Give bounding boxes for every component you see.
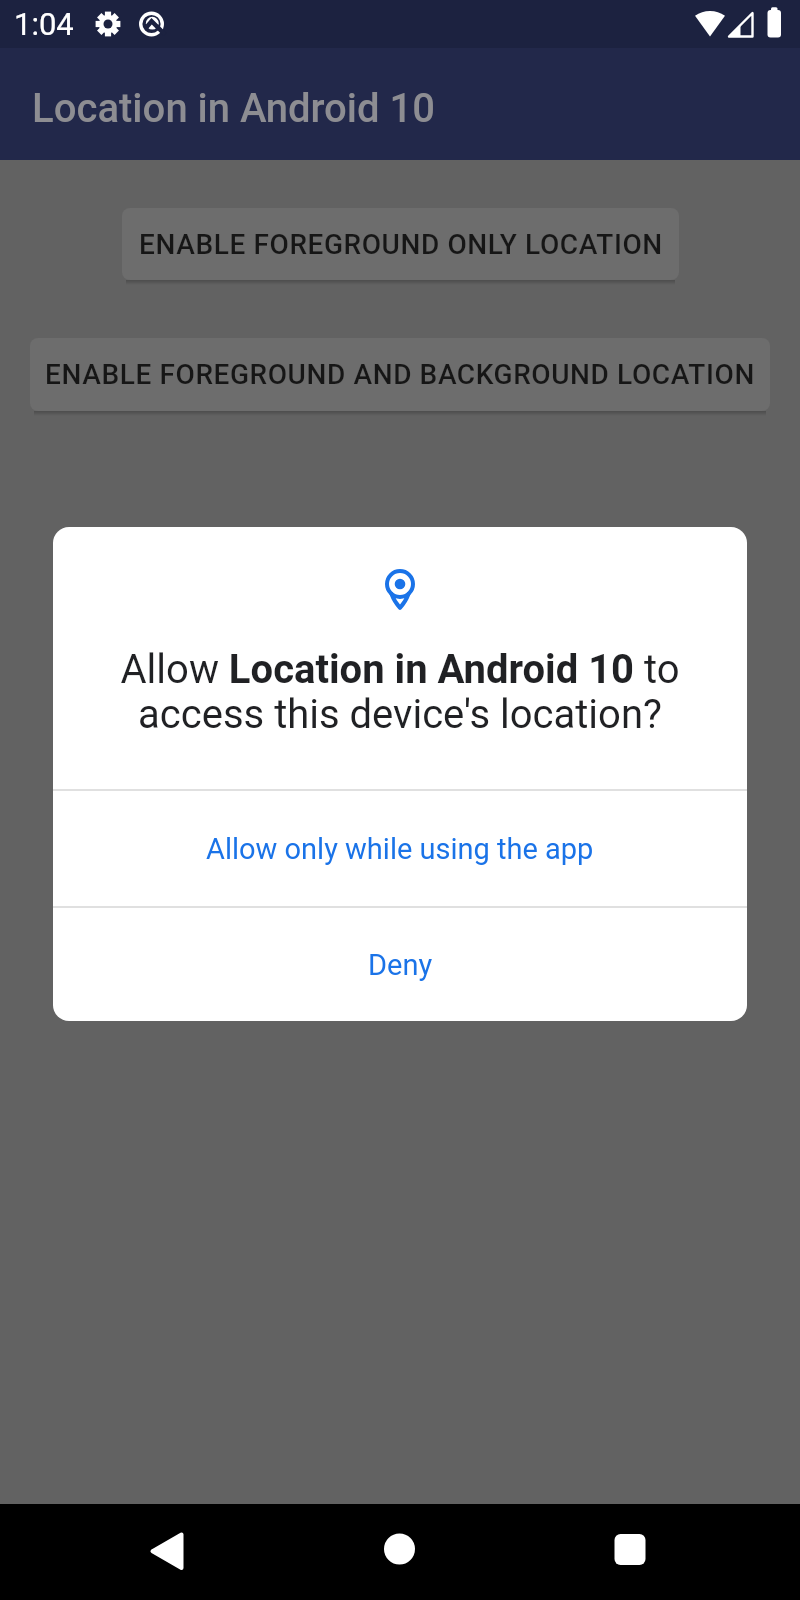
- button[interactable]: [352, 1504, 448, 1600]
- button[interactable]: Deny: [53, 908, 747, 1021]
- button[interactable]: Allow only while using the app: [53, 791, 747, 906]
- staticText: ENABLE FOREGROUND ONLY LOCATION: [139, 228, 663, 261]
- staticText: Location in Android 10: [32, 85, 435, 132]
- staticText: Allow Location in Android 10 to access t…: [53, 646, 747, 737]
- button[interactable]: ENABLE FOREGROUND AND BACKGROUND LOCATIO…: [30, 338, 770, 411]
- staticText: ENABLE FOREGROUND AND BACKGROUND LOCATIO…: [45, 358, 755, 391]
- staticText: Deny: [368, 948, 433, 982]
- staticText: Allow only while using the app: [206, 832, 594, 866]
- button[interactable]: [119, 1504, 215, 1600]
- button[interactable]: ENABLE FOREGROUND ONLY LOCATION: [122, 208, 679, 280]
- button[interactable]: [582, 1504, 678, 1600]
- staticText: 1:04: [14, 6, 74, 42]
